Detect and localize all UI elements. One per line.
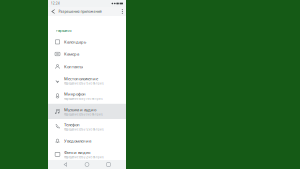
staticText: Разрешения — [56, 29, 72, 33]
button[interactable]: Местоположение — [48, 73, 126, 88]
button[interactable]: Фото и видео — [48, 148, 126, 161]
staticText: Разрешение есть у 23 из 86 прил. — [64, 155, 104, 159]
button[interactable]: Уведомления — [48, 134, 126, 148]
button[interactable]: Ещё — [119, 7, 126, 16]
button[interactable]: Календарь — [48, 36, 126, 48]
button[interactable]: Главный экран — [83, 160, 91, 168]
button[interactable]: Камера — [48, 48, 126, 60]
staticText: Музыка и аудио — [64, 107, 96, 112]
staticText: Контакты — [64, 64, 83, 69]
button[interactable]: Назад — [62, 160, 69, 169]
button[interactable]: Недавние приложения — [105, 161, 112, 168]
staticText: Календарь — [64, 39, 86, 45]
staticText: Микрофон — [64, 91, 86, 97]
staticText: Разрешение есть у 15 из 86 прил. — [64, 82, 104, 85]
staticText: Камера — [64, 51, 79, 57]
button[interactable]: Назад — [48, 7, 58, 16]
staticText: Разрешение есть у 0 из 86 прил. — [64, 113, 103, 116]
staticText: Телефон — [64, 122, 80, 127]
button[interactable]: Телефон — [48, 119, 126, 134]
staticText: 12:24 — [51, 2, 60, 5]
button[interactable]: Микрофон — [48, 88, 126, 104]
staticText: Местоположение — [64, 76, 98, 81]
button[interactable]: Контакты — [48, 60, 126, 73]
staticText: Разрешение есть у 9 из 86 прил. — [64, 97, 103, 100]
button[interactable]: Музыка и аудио — [48, 104, 126, 119]
staticText: Уведомления — [64, 138, 91, 144]
staticText: Разрешения приложений — [58, 9, 101, 14]
staticText: Разрешение есть у 12 из 86 прил. — [64, 128, 104, 131]
staticText: Фото и видео — [64, 150, 90, 155]
